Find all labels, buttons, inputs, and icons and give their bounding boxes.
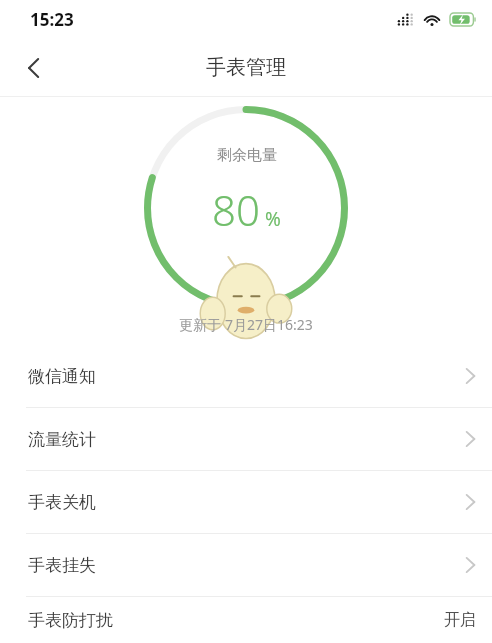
button[interactable]: 手表关机	[0, 471, 492, 533]
button[interactable]: Back	[10, 45, 56, 91]
button[interactable]: 微信通知	[0, 345, 492, 407]
staticText: 更新于 7月27日16:23	[179, 315, 313, 334]
staticText: 流量统计	[28, 429, 96, 450]
staticText: 手表关机	[28, 492, 96, 513]
staticText: 手表防打扰	[28, 610, 113, 631]
staticText: 剩余电量	[217, 146, 277, 165]
staticText: 80	[212, 181, 260, 238]
button[interactable]: 手表挂失	[0, 534, 492, 596]
button[interactable]: 流量统计	[0, 408, 492, 470]
staticText: 手表挂失	[28, 555, 96, 576]
staticText: %	[265, 206, 281, 232]
staticText: 15:23	[30, 8, 74, 31]
staticText: 开启	[444, 610, 476, 630]
staticText: 手表管理	[206, 55, 286, 80]
staticText: 微信通知	[28, 366, 96, 387]
button[interactable]: 手表防打扰	[0, 597, 492, 643]
